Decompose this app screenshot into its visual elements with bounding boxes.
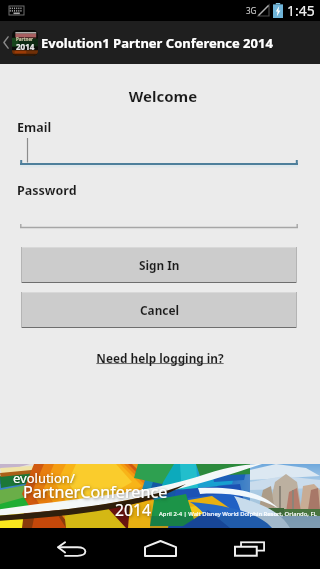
staticText: 2014	[115, 499, 151, 520]
staticText: Password	[17, 182, 77, 199]
button[interactable]: Recent apps	[230, 528, 270, 569]
staticText: Email	[17, 119, 52, 136]
staticText: evolution/	[13, 469, 75, 487]
staticText: 1:45	[287, 1, 315, 20]
button[interactable]: Back	[52, 528, 92, 569]
staticText: Cancel	[140, 302, 179, 318]
staticText: PartnerConference	[23, 481, 168, 503]
button[interactable]: Need help logging in?	[0, 350, 320, 366]
staticText: 3G	[246, 5, 257, 16]
button[interactable]: Sign In	[21, 247, 297, 283]
staticText: Sign In	[139, 257, 180, 273]
button[interactable]: Home	[140, 528, 181, 569]
button[interactable]: Cancel	[21, 292, 297, 328]
staticText: 2014	[16, 41, 35, 52]
button[interactable]: Navigate up	[0, 21, 41, 64]
staticText: Evolution1 Partner Conference 2014	[41, 34, 273, 52]
staticText: Welcome	[3, 86, 320, 106]
staticText: Partner	[16, 36, 34, 42]
staticText: April 2-4 | Walt Disney World Dolphin Re…	[159, 510, 317, 518]
